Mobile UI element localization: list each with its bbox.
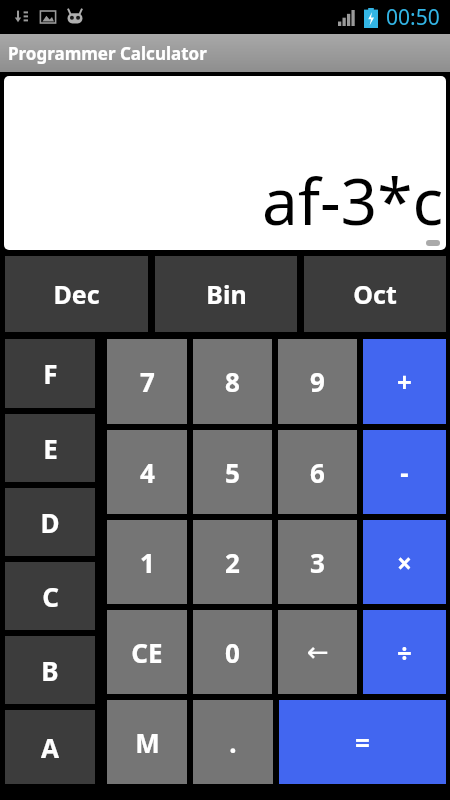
staticText: af-3*c <box>262 157 444 244</box>
button[interactable]: 0 <box>193 610 272 694</box>
staticText: + <box>397 364 412 399</box>
staticText: 5 <box>225 455 240 490</box>
button[interactable]: CE <box>107 610 187 694</box>
button[interactable]: 9 <box>278 339 357 424</box>
button[interactable]: ÷ <box>363 610 446 694</box>
button[interactable]: 7 <box>107 339 187 424</box>
staticText: F <box>43 356 58 391</box>
staticText: Bin <box>206 277 247 311</box>
staticText: 7 <box>140 364 155 399</box>
staticText: 00:50 <box>386 3 440 32</box>
button[interactable]: × <box>363 520 446 604</box>
staticText: B <box>41 653 59 688</box>
button[interactable]: 4 <box>107 430 187 514</box>
staticText: - <box>400 455 409 490</box>
button[interactable]: Bin <box>155 256 297 332</box>
staticText: = <box>355 725 370 760</box>
button[interactable]: M <box>107 700 187 784</box>
staticText: × <box>397 545 412 580</box>
staticText: 8 <box>225 364 240 399</box>
button[interactable]: af-3*c <box>4 76 446 250</box>
staticText: CE <box>131 635 163 670</box>
button[interactable]: - <box>363 430 446 514</box>
staticText: ← <box>307 637 329 667</box>
button[interactable]: . <box>193 700 273 784</box>
button[interactable]: 5 <box>193 430 272 514</box>
staticText: E <box>43 431 58 466</box>
button[interactable]: D <box>5 488 95 556</box>
button[interactable]: A <box>5 710 95 784</box>
button[interactable]: F <box>5 339 95 408</box>
button[interactable]: 2 <box>193 520 272 604</box>
staticText: . <box>229 725 237 760</box>
button[interactable]: + <box>363 339 446 424</box>
staticText: 9 <box>310 364 325 399</box>
button[interactable]: 1 <box>107 520 187 604</box>
button[interactable]: 3 <box>278 520 357 604</box>
staticText: Oct <box>353 277 397 311</box>
staticText: 6 <box>310 455 325 490</box>
button[interactable]: C <box>5 562 95 630</box>
staticText: 1 <box>140 545 155 580</box>
staticText: A <box>41 730 59 765</box>
button[interactable]: 6 <box>278 430 357 514</box>
button[interactable]: Dec <box>5 256 148 332</box>
staticText: Dec <box>53 277 100 311</box>
staticText: ÷ <box>397 635 412 670</box>
staticText: 0 <box>225 635 240 670</box>
staticText: 3 <box>310 545 325 580</box>
button[interactable]: E <box>5 414 95 482</box>
staticText: 4 <box>140 455 155 490</box>
button[interactable]: = <box>279 700 446 784</box>
staticText: C <box>42 579 59 614</box>
staticText: Programmer Calculator <box>8 42 207 65</box>
staticText: 2 <box>225 545 240 580</box>
button[interactable]: 8 <box>193 339 272 424</box>
button[interactable]: B <box>5 636 95 704</box>
staticText: D <box>40 505 60 540</box>
button[interactable]: Backspace <box>278 610 357 694</box>
staticText: M <box>135 725 160 760</box>
button[interactable]: Oct <box>304 256 446 332</box>
